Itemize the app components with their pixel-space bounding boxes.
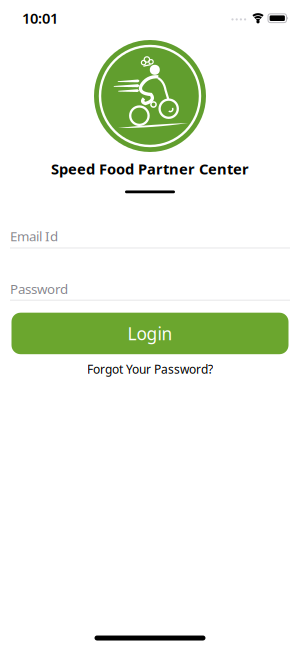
staticText: Forgot Your Password?: [87, 361, 213, 377]
staticText: Email Id: [10, 227, 58, 245]
staticText: Speed Food Partner Center: [51, 159, 249, 178]
button[interactable]: Email Id: [10, 227, 290, 248]
staticText: Password: [10, 280, 68, 298]
staticText: Login: [127, 322, 172, 345]
staticText: 10:01: [22, 8, 58, 28]
button[interactable]: Login: [11, 313, 288, 354]
button[interactable]: Password: [10, 280, 290, 301]
button[interactable]: Forgot Your Password?: [87, 361, 213, 377]
